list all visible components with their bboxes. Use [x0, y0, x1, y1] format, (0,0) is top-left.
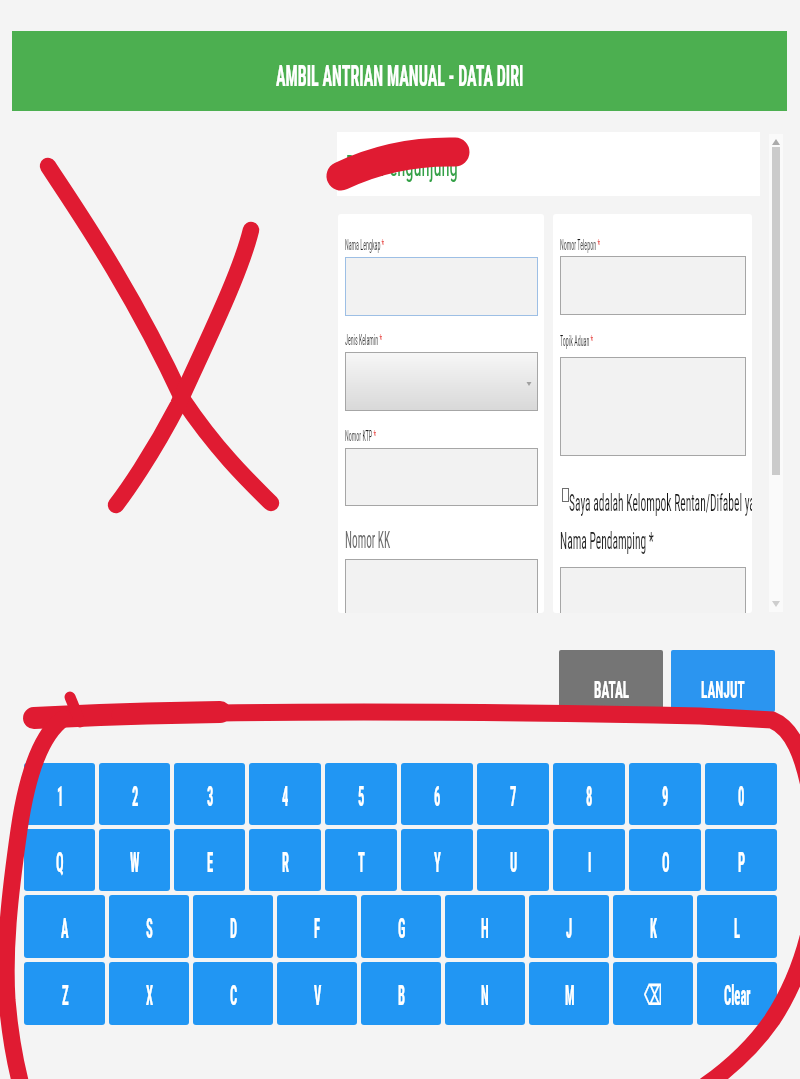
staticText: S	[146, 912, 153, 945]
button[interactable]: L	[697, 895, 777, 958]
staticText: Z	[62, 979, 69, 1012]
button[interactable]: LANJUT	[671, 650, 775, 712]
staticText: 5	[358, 780, 365, 813]
staticText: O	[662, 846, 670, 879]
staticText: G	[398, 912, 406, 945]
button[interactable]	[560, 256, 746, 315]
staticText: J	[566, 912, 572, 945]
button[interactable]: X	[109, 962, 189, 1025]
button[interactable]: 3	[174, 763, 245, 825]
button[interactable]: 0	[705, 763, 777, 825]
button[interactable]: D	[193, 895, 273, 958]
button[interactable]	[345, 352, 538, 411]
button[interactable]: 9	[629, 763, 701, 825]
staticText: P	[738, 846, 745, 879]
staticText: Nomor KK	[345, 527, 391, 554]
staticText: 3	[207, 780, 214, 813]
button[interactable]: S	[109, 895, 189, 958]
button[interactable]: T	[325, 829, 397, 891]
button[interactable]	[345, 257, 538, 316]
staticText: H	[481, 912, 489, 945]
button[interactable]	[560, 567, 746, 613]
staticText: V	[314, 979, 322, 1012]
button[interactable]: N	[445, 962, 525, 1025]
button[interactable]: 7	[477, 763, 549, 825]
button[interactable]: H	[445, 895, 525, 958]
staticText: Jenis Kelamin	[345, 331, 378, 349]
button[interactable]: W	[99, 829, 170, 891]
button[interactable]: Q	[24, 829, 95, 891]
staticText: 6	[434, 780, 441, 813]
button[interactable]: A	[24, 895, 105, 958]
staticText: *	[380, 236, 384, 254]
staticText: Nomor Telepon	[560, 236, 596, 254]
staticText: 2	[132, 780, 139, 813]
staticText: 8	[586, 780, 593, 813]
button[interactable]: J	[529, 895, 609, 958]
button[interactable]: U	[477, 829, 549, 891]
button[interactable]: V	[277, 962, 357, 1025]
staticText: M	[565, 979, 575, 1012]
button[interactable]: BATAL	[559, 650, 663, 712]
staticText: X	[146, 979, 153, 1012]
button[interactable]: G	[361, 895, 441, 958]
button[interactable]: K	[613, 895, 693, 958]
button[interactable]: C	[193, 962, 273, 1025]
button[interactable]: 5	[325, 763, 397, 825]
staticText: C	[230, 979, 237, 1012]
staticText: Nomor KTP	[345, 427, 372, 445]
staticText: 1	[57, 780, 64, 813]
staticText: 7	[510, 780, 517, 813]
staticText: Nama Pendamping *	[560, 528, 654, 555]
button[interactable]: E	[174, 829, 245, 891]
staticText: R	[282, 846, 289, 879]
staticText: D	[230, 912, 237, 945]
staticText: ⌫	[644, 979, 662, 1012]
button[interactable]	[560, 357, 746, 456]
button[interactable]: M	[529, 962, 609, 1025]
button[interactable]	[345, 559, 538, 613]
button[interactable]: 6	[401, 763, 473, 825]
staticText: 9	[662, 780, 669, 813]
staticText: 0	[738, 780, 745, 813]
staticText: Nama Lengkap	[345, 236, 381, 254]
staticText: W	[130, 846, 139, 879]
staticText: *	[589, 332, 593, 350]
button[interactable]: P	[705, 829, 777, 891]
button[interactable]	[562, 488, 569, 502]
button[interactable]: Z	[24, 962, 105, 1025]
button[interactable]: O	[629, 829, 701, 891]
staticText: Y	[434, 846, 441, 879]
button[interactable]: 1	[24, 763, 95, 825]
staticText: K	[650, 912, 657, 945]
staticText: Clear	[724, 979, 750, 1012]
button[interactable]: B	[361, 962, 441, 1025]
staticText: E	[207, 846, 213, 879]
staticText: F	[314, 912, 320, 945]
button[interactable]: Y	[401, 829, 473, 891]
button[interactable]: R	[249, 829, 321, 891]
button[interactable]: ⌫	[613, 962, 693, 1025]
staticText: L	[734, 912, 740, 945]
staticText: *	[378, 331, 382, 349]
button[interactable]: 8	[553, 763, 625, 825]
staticText: Saya adalah Kelompok Rentan/Difabel yang	[568, 490, 752, 517]
button[interactable]	[345, 448, 538, 506]
staticText: 4	[282, 780, 289, 813]
staticText: N	[481, 979, 489, 1012]
staticText: A	[61, 912, 69, 945]
button[interactable]: 2	[99, 763, 170, 825]
staticText: Topik Aduan	[560, 332, 590, 350]
button[interactable]: AMBIL ANTRIAN MANUAL - DATA DIRI	[12, 31, 787, 111]
staticText: I	[588, 846, 592, 879]
button[interactable]: 4	[249, 763, 321, 825]
staticText: U	[510, 846, 517, 879]
staticText: *	[372, 427, 376, 445]
staticText: Data Pengunjung	[346, 149, 458, 183]
staticText: AMBIL ANTRIAN MANUAL - DATA DIRI	[276, 58, 524, 93]
button[interactable]: I	[553, 829, 625, 891]
button[interactable]: Clear	[697, 962, 777, 1025]
button[interactable]: F	[277, 895, 357, 958]
staticText: BATAL	[594, 676, 629, 704]
